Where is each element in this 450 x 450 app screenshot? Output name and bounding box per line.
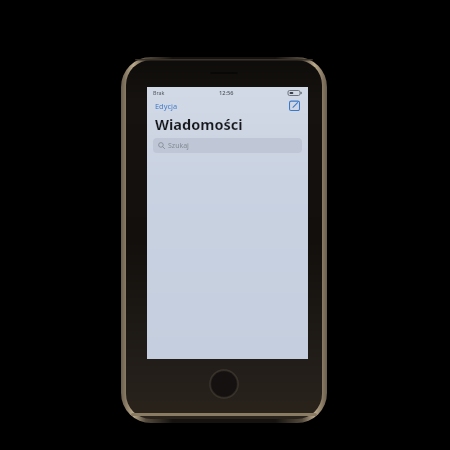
- button[interactable]: New message: [288, 99, 301, 112]
- button[interactable]: Edycja: [154, 100, 179, 112]
- staticText: Brak: [153, 89, 165, 96]
- staticText: Edycja: [155, 101, 178, 111]
- button[interactable]: Szukaj: [153, 138, 302, 153]
- staticText: Wiadomości: [155, 114, 243, 134]
- staticText: Szukaj: [168, 141, 189, 151]
- staticText: 12:56: [219, 89, 234, 97]
